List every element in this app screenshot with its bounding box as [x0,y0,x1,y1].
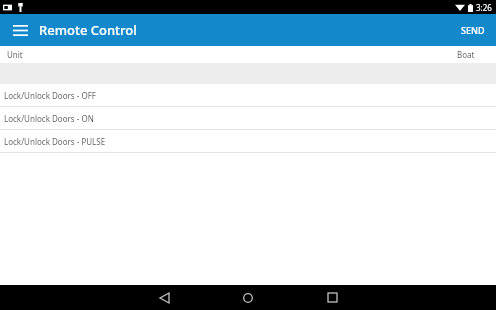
button[interactable]: Lock/Unlock Doors - OFF [0,84,496,107]
staticText: SEND [461,24,485,36]
staticText: Lock/Unlock Doors - PULSE [4,136,106,147]
button[interactable]: Home [218,285,278,310]
staticText: Lock/Unlock Doors - OFF [4,90,96,101]
staticText: 3:26 [476,2,492,13]
button[interactable]: Open navigation menu [7,17,33,43]
button[interactable]: Back [134,285,194,310]
staticText: Lock/Unlock Doors - ON [4,113,94,124]
staticText: Remote Control [39,21,137,39]
button[interactable]: SEND [450,14,496,46]
button[interactable]: Lock/Unlock Doors - ON [0,107,496,130]
button[interactable]: Lock/Unlock Doors - PULSE [0,130,496,153]
staticText: Boat [457,49,475,60]
button[interactable]: Recent apps [302,285,362,310]
staticText: Unit [7,49,23,60]
